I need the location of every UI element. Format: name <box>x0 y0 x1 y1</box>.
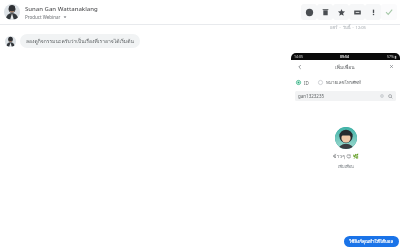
staticText: ลองดูกิจกรรมนะครับว่าเป็นเรื่องที่เราอาจ… <box>26 37 134 45</box>
button[interactable]: Search <box>387 93 393 99</box>
button[interactable]: ใช้ลิงก์คุณทำให้ได้บอล <box>344 236 399 247</box>
staticText: ID <box>304 80 309 86</box>
staticText: Product Webinar <box>25 14 61 20</box>
staticText: 09:54 <box>340 54 349 59</box>
button[interactable]: Mark done <box>381 4 397 20</box>
staticText: เพิ่มเพื่อน <box>335 63 355 71</box>
button[interactable]: Star <box>333 4 349 20</box>
button[interactable]: Back <box>295 62 304 71</box>
button[interactable]: ID <box>296 79 395 86</box>
button[interactable]: Close <box>387 62 396 71</box>
button[interactable]: Delete <box>317 4 333 20</box>
button[interactable]: ลองดูกิจกรรมนะครับว่าเป็นเรื่องที่เราอาจ… <box>20 34 140 48</box>
staticText: 14:05 <box>294 54 303 59</box>
button[interactable]: Report spam <box>365 4 381 20</box>
staticText: Sunan Gan Wattanaklang <box>25 5 98 13</box>
staticText: ใช้ลิงก์คุณทำให้ได้บอล <box>349 238 394 245</box>
button[interactable]: gan1323235 <box>295 91 396 101</box>
staticText: 57% ▮ <box>387 54 397 59</box>
button[interactable]: Print <box>301 4 317 20</box>
staticText: แชร์ · วันนี้ · 12:05 <box>330 24 366 30</box>
button[interactable]: Archive <box>349 4 365 20</box>
staticText: ข้าวๆ 😊 🌿 <box>333 152 359 160</box>
staticText: เพิ่มเพื่อน <box>338 163 354 169</box>
staticText: gan1323235 <box>298 93 325 99</box>
staticText: หมายเลขโทรศัพท์ <box>326 79 362 86</box>
